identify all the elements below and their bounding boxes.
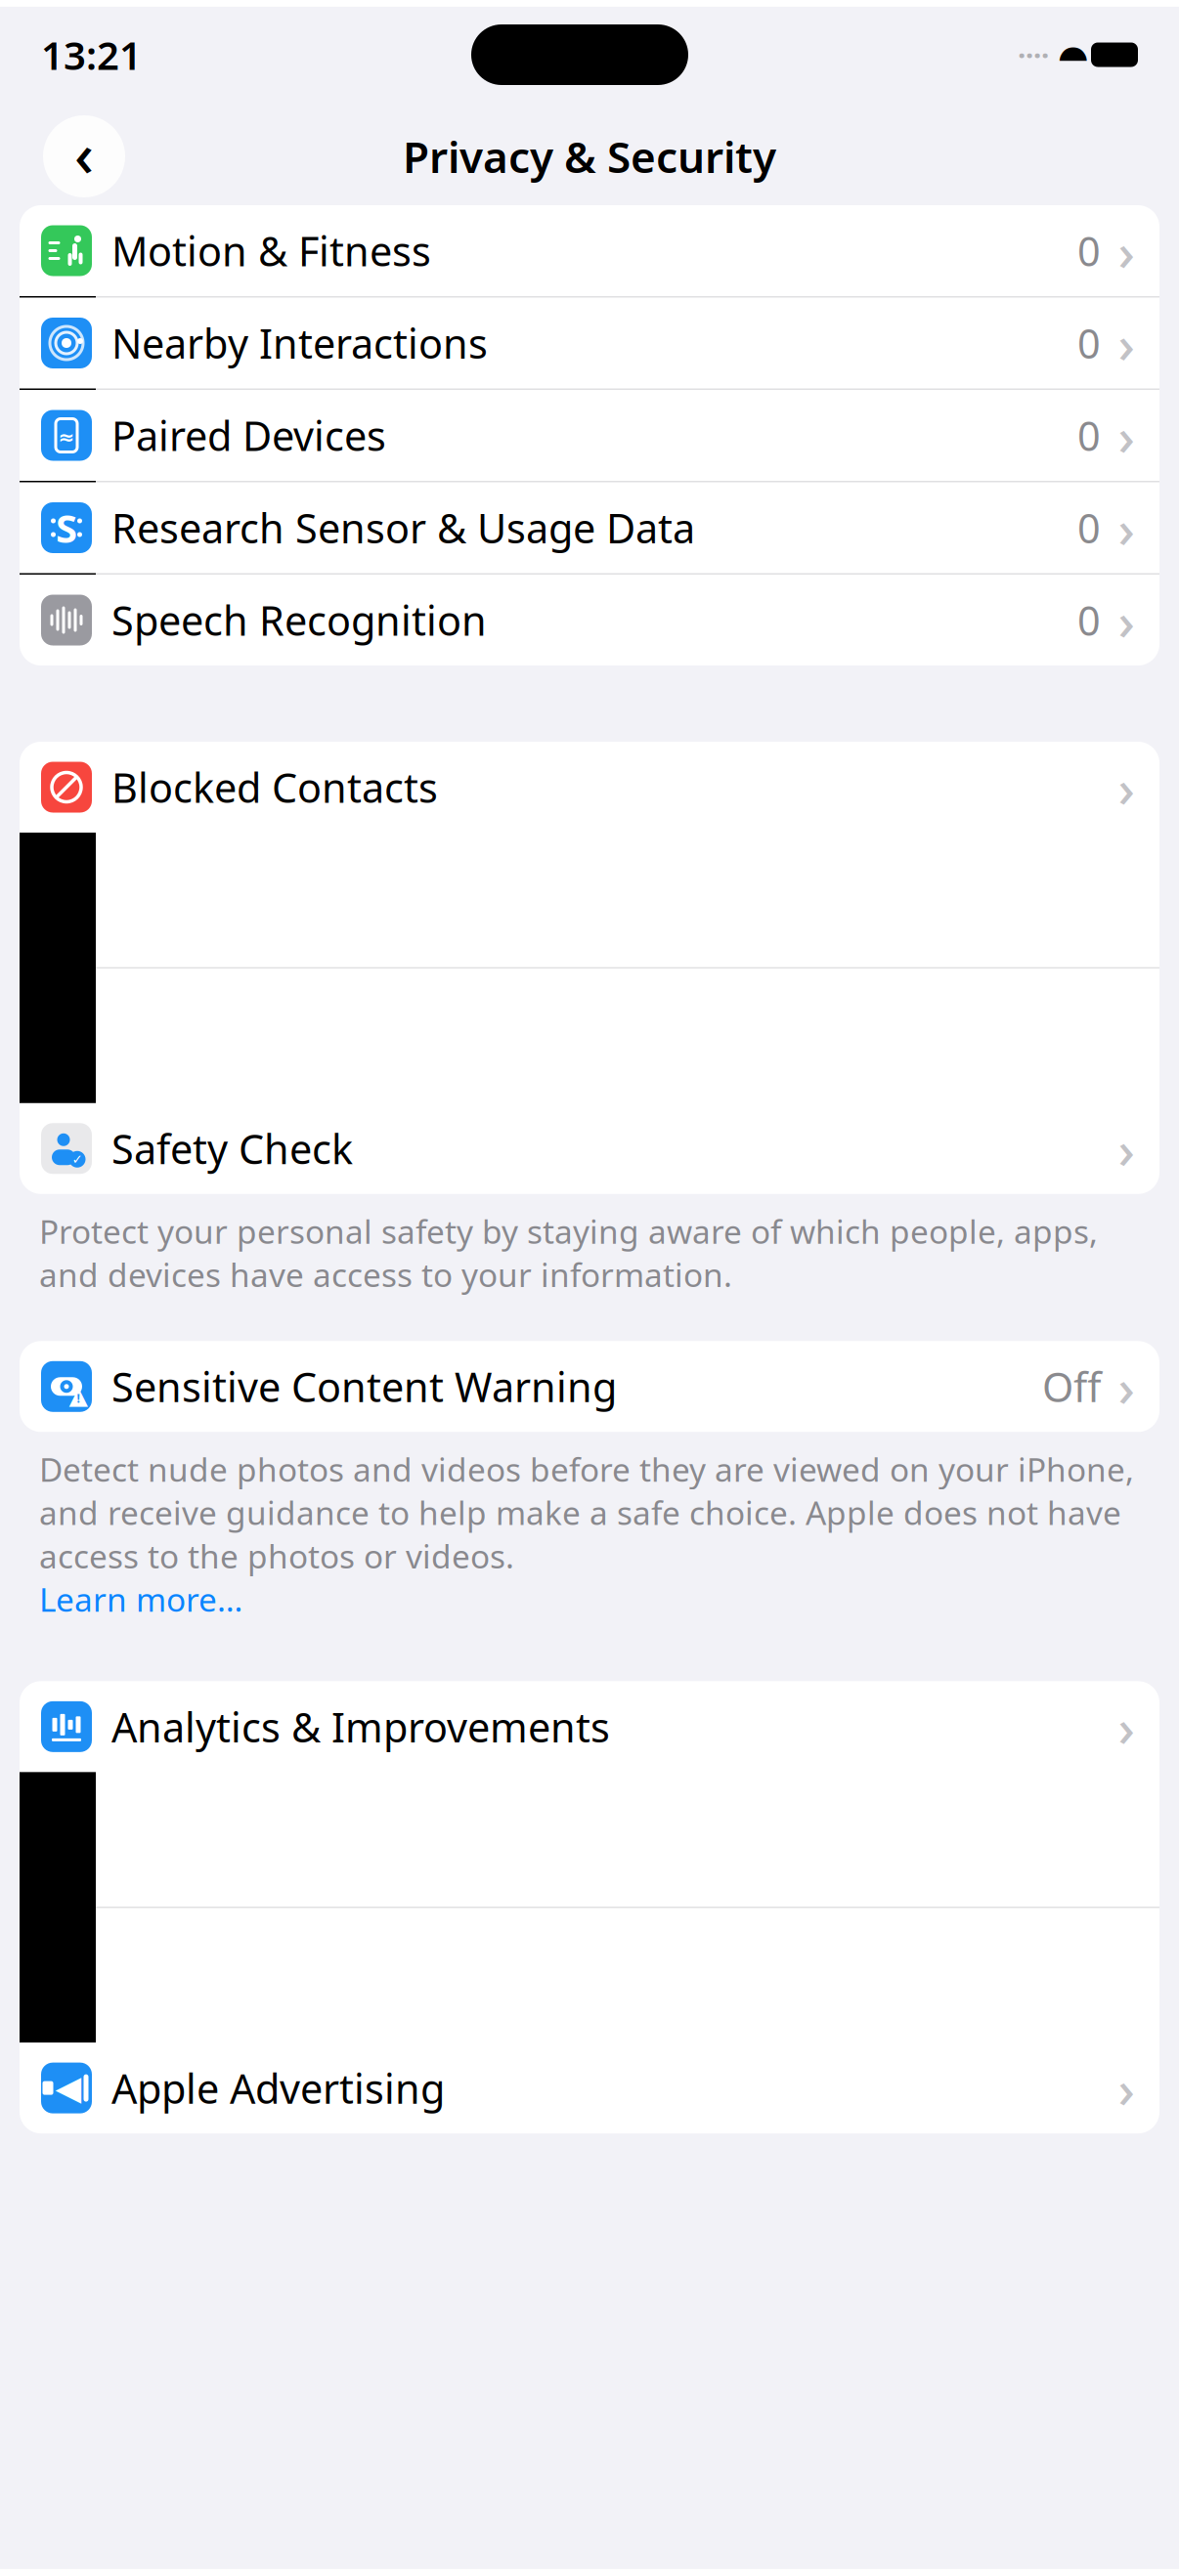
staticText: › xyxy=(1118,1352,1135,1421)
staticText: Protect your personal safety by staying … xyxy=(39,1210,1098,1296)
staticText: 0 xyxy=(1077,593,1101,647)
button[interactable]: Back xyxy=(43,115,125,197)
button[interactable]: ▲ xyxy=(20,1341,1159,1432)
staticText: Apple Advertising xyxy=(111,2061,445,2115)
button[interactable]: ◀ xyxy=(20,2043,1159,2133)
staticText: 0 xyxy=(1077,316,1101,370)
staticText: ✓ xyxy=(72,1152,83,1167)
staticText: › xyxy=(1118,308,1135,378)
staticText: › xyxy=(1118,585,1135,655)
staticText: ! xyxy=(77,1390,80,1406)
staticText: › xyxy=(1118,401,1135,470)
button[interactable]: S xyxy=(20,482,1159,573)
button[interactable]: ✓ xyxy=(20,1103,1159,1194)
staticText: 0 xyxy=(1077,409,1101,462)
staticText: Detect nude photos and videos before the… xyxy=(39,1448,1134,1577)
staticText: › xyxy=(1118,1114,1135,1183)
staticText: ▲ xyxy=(69,1381,87,1409)
button[interactable]: Analytics & Improvements xyxy=(20,1681,1159,1772)
button[interactable]: Learn more… xyxy=(39,1577,242,1621)
staticText: Analytics & Improvements xyxy=(111,1700,610,1753)
staticText: Privacy & Security xyxy=(403,128,776,185)
staticText: Blocked Contacts xyxy=(111,760,438,814)
staticText: › xyxy=(1118,216,1135,285)
staticText: Motion & Fitness xyxy=(111,224,431,278)
staticText: ◗ xyxy=(1061,35,1079,75)
staticText: Paired Devices xyxy=(111,409,386,462)
staticText: 0 xyxy=(1077,224,1101,278)
button[interactable]: Blocked Contacts xyxy=(20,742,1159,833)
button[interactable]: Motion & Fitness xyxy=(20,205,1159,296)
staticText: 13:21 xyxy=(41,29,142,81)
staticText: › xyxy=(1118,493,1135,562)
staticText: Off xyxy=(1042,1360,1101,1413)
staticText: Research Sensor & Usage Data xyxy=(111,501,695,555)
staticText: › xyxy=(1118,2053,1135,2123)
staticText: Nearby Interactions xyxy=(111,316,488,370)
staticText: ≈ xyxy=(58,426,75,448)
staticText: Learn more… xyxy=(39,1577,242,1621)
staticText: ◀ xyxy=(55,2069,82,2107)
staticText: Speech Recognition xyxy=(111,593,487,647)
staticText: › xyxy=(1118,1692,1135,1761)
staticText: Safety Check xyxy=(111,1122,353,1175)
staticText: S xyxy=(56,502,77,554)
staticText: 0 xyxy=(1077,501,1101,555)
staticText: ···· xyxy=(1018,36,1049,74)
button[interactable]: Speech Recognition xyxy=(20,575,1159,665)
button[interactable]: ≈ xyxy=(20,390,1159,481)
staticText: Sensitive Content Warning xyxy=(111,1360,617,1413)
button[interactable]: Nearby Interactions xyxy=(20,298,1159,388)
staticText: › xyxy=(1118,753,1135,822)
staticText: ‹ xyxy=(74,114,94,193)
